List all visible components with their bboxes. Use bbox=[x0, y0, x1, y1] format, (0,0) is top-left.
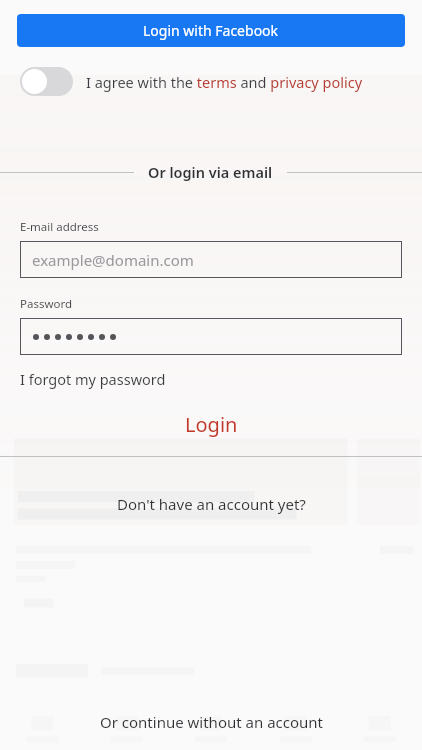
button[interactable]: Login bbox=[0, 407, 422, 442]
button[interactable] bbox=[20, 318, 402, 355]
button[interactable]: Don't have an account yet? bbox=[0, 490, 422, 518]
button[interactable]: I forgot my password bbox=[0, 367, 186, 391]
staticText: Password bbox=[20, 296, 73, 312]
button[interactable]: I agree with the terms and privacy polic… bbox=[20, 67, 73, 96]
staticText: E-mail address bbox=[20, 219, 99, 235]
staticText: I agree with the terms and privacy polic… bbox=[86, 72, 363, 92]
staticText: Or login via email bbox=[148, 162, 273, 182]
staticText: Or continue without an account bbox=[100, 712, 323, 732]
staticText: Don't have an account yet? bbox=[117, 494, 306, 514]
button[interactable]: Login with Facebook bbox=[17, 14, 405, 47]
staticText: Login bbox=[185, 411, 238, 438]
button[interactable]: I agree with the terms and privacy polic… bbox=[0, 63, 422, 100]
button[interactable]: example@domain.com bbox=[20, 241, 402, 278]
button[interactable]: Or continue without an account bbox=[0, 706, 422, 750]
staticText: Login with Facebook bbox=[143, 21, 279, 40]
staticText: example@domain.com bbox=[32, 250, 194, 270]
